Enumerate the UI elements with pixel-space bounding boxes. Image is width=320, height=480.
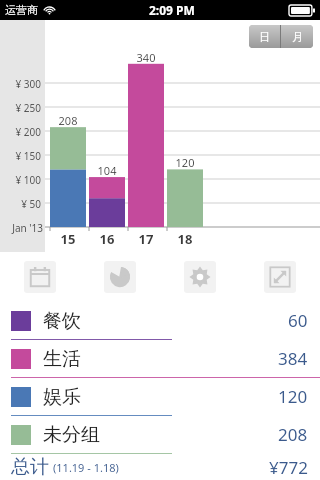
staticText: 120 — [167, 155, 203, 170]
staticText: 384 — [278, 347, 308, 370]
staticText: 2:09 PM — [149, 2, 195, 18]
button[interactable]: 月 — [281, 25, 313, 48]
button[interactable]: 生活 — [0, 340, 320, 377]
staticText: 17 — [128, 230, 164, 248]
button[interactable]: Pie chart — [104, 261, 136, 293]
staticText: ¥ 300 — [0, 77, 41, 91]
staticText: 娱乐 — [43, 385, 81, 409]
staticText: 未分组 — [43, 423, 100, 447]
staticText: 生活 — [43, 347, 81, 371]
staticText: ¥ 150 — [0, 149, 41, 163]
staticText: Jan '13 — [2, 221, 43, 235]
staticText: 运营商 — [5, 3, 38, 17]
button[interactable]: Expand — [264, 261, 296, 293]
button[interactable]: 娱乐 — [0, 378, 320, 415]
staticText: 104 — [89, 163, 125, 178]
staticText: 总计 — [11, 455, 49, 479]
button[interactable]: 日 — [249, 25, 280, 48]
staticText: ¥ 200 — [0, 125, 41, 139]
button[interactable]: Settings — [184, 261, 216, 293]
staticText: 60 — [288, 309, 308, 332]
staticText: ¥ 50 — [0, 197, 41, 211]
staticText: ¥772 — [269, 456, 308, 479]
staticText: 120 — [278, 385, 308, 408]
button[interactable]: 未分组 — [0, 416, 320, 453]
staticText: 月 — [292, 30, 303, 44]
staticText: ¥ 250 — [0, 101, 41, 115]
button[interactable]: Calendar — [24, 261, 56, 293]
staticText: 餐饮 — [43, 309, 81, 333]
staticText: 208 — [278, 423, 308, 446]
staticText: 340 — [128, 50, 164, 65]
staticText: 日 — [259, 30, 270, 44]
staticText: 16 — [89, 230, 125, 248]
staticText: ¥ 100 — [0, 173, 41, 187]
staticText: 15 — [50, 230, 86, 248]
staticText: 18 — [167, 230, 203, 248]
staticText: 208 — [50, 113, 86, 128]
button[interactable]: 餐饮 — [0, 302, 320, 339]
staticText: (11.19 - 1.18) — [53, 460, 119, 475]
